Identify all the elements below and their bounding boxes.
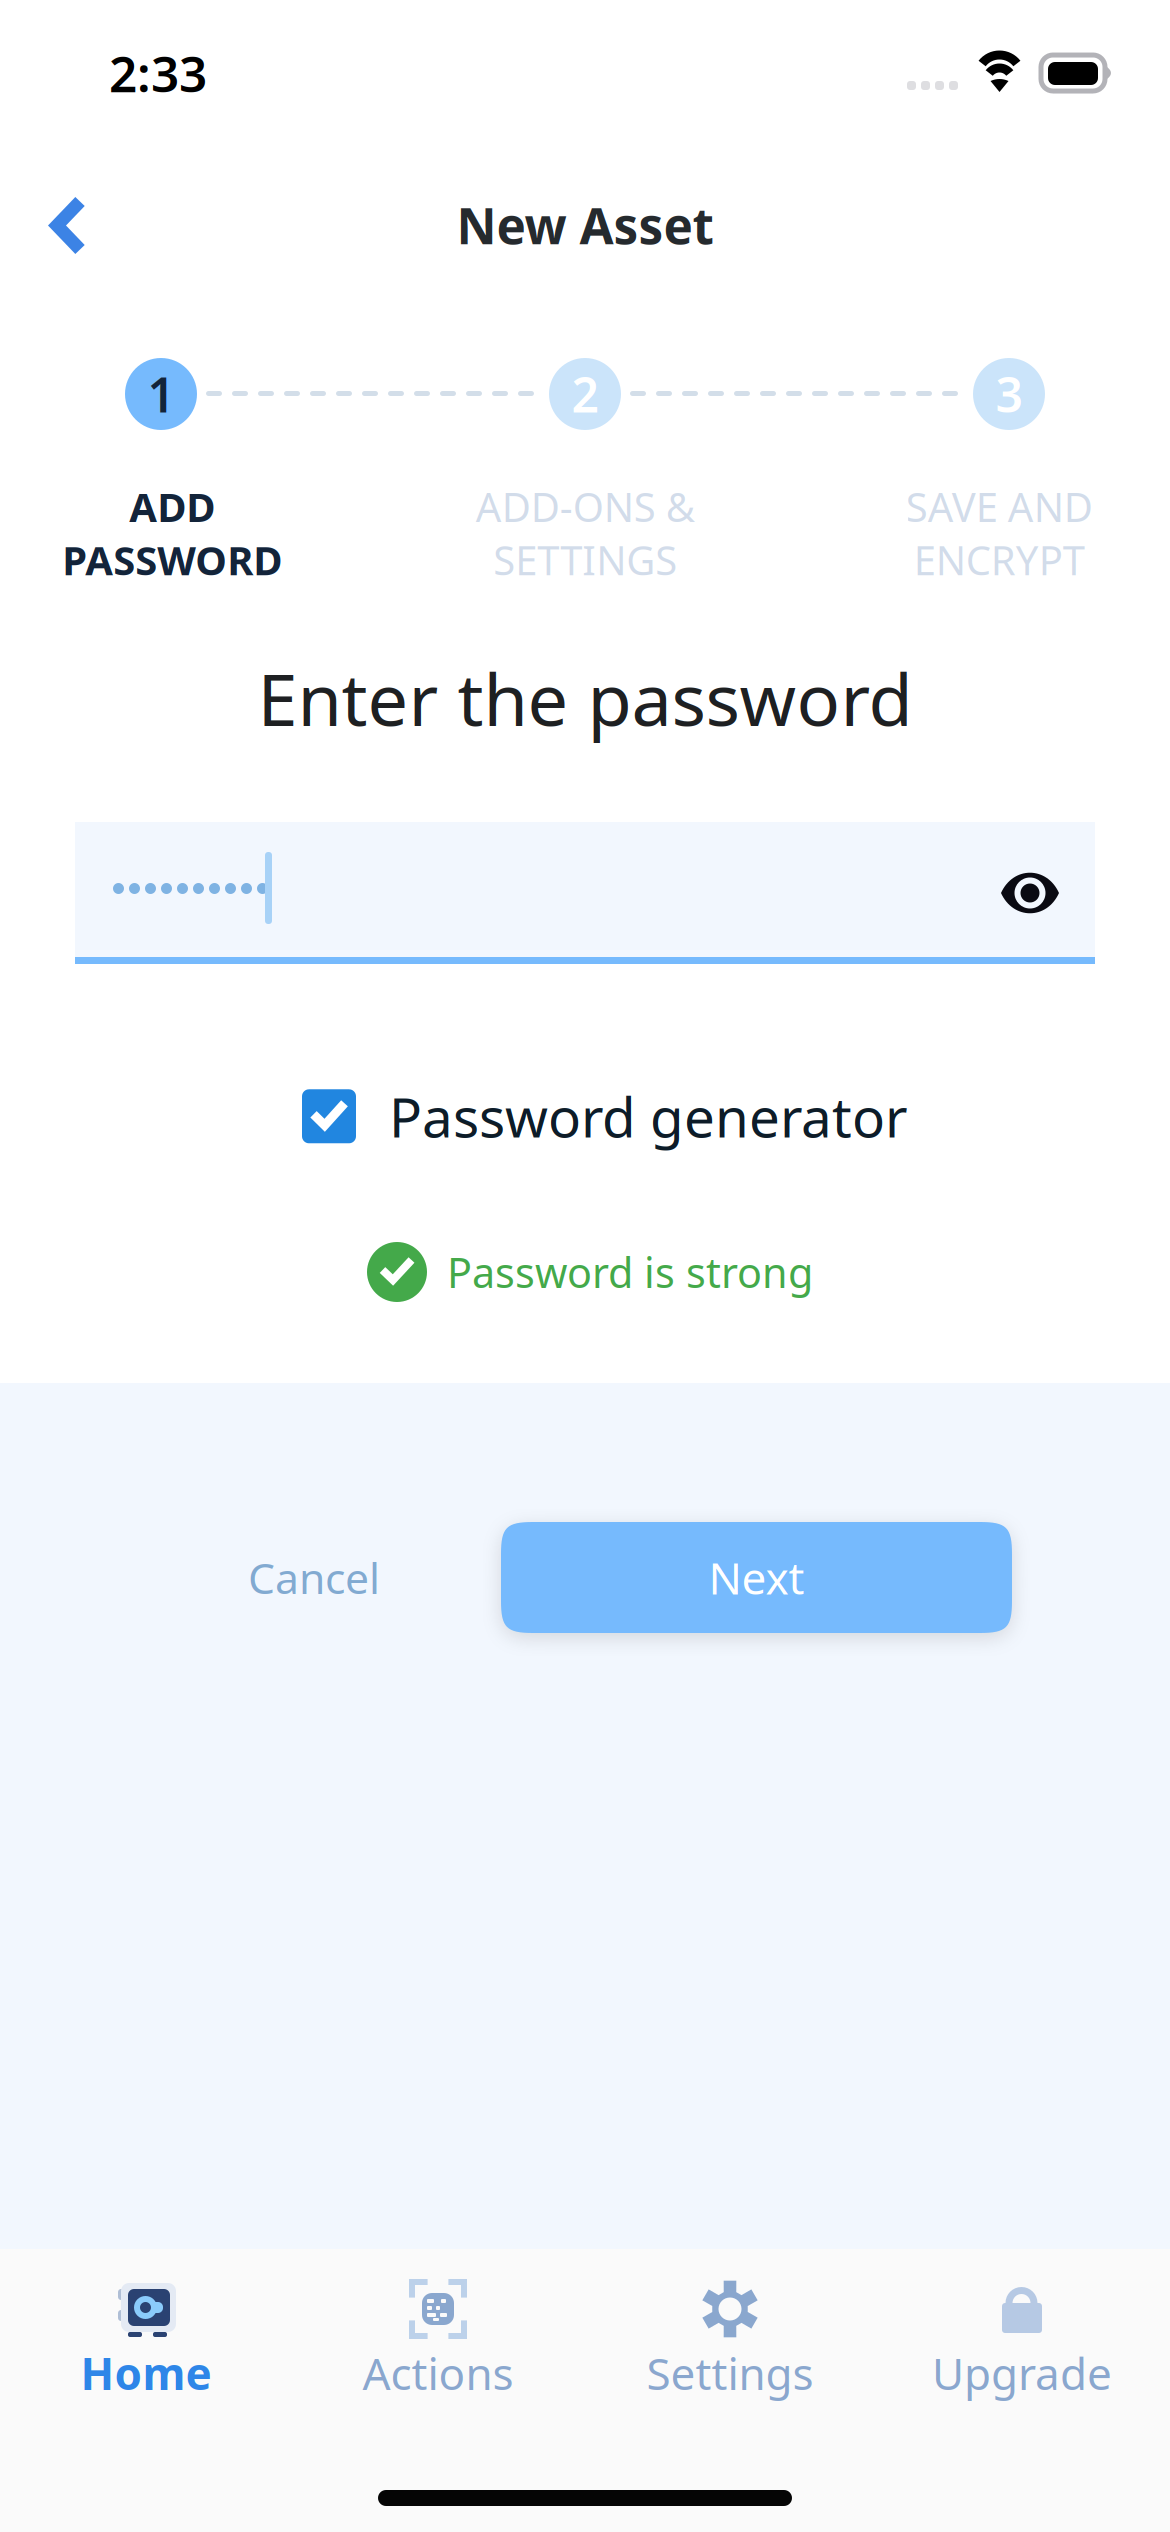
staticText: SAVE AND ENCRYPT: [905, 480, 1092, 586]
staticText: Upgrade: [932, 2344, 1112, 2402]
staticText: Settings: [646, 2344, 813, 2402]
staticText: Actions: [362, 2344, 513, 2402]
button[interactable]: Back: [11, 168, 126, 283]
staticText: 2: [571, 362, 598, 426]
staticText: Password is strong: [447, 1245, 813, 1299]
staticText: Home: [80, 2344, 211, 2402]
staticText: ADD PASSWORD: [62, 480, 282, 586]
staticText: ADD-ONS & SETTINGS: [475, 480, 694, 586]
button[interactable]: Home: [21, 2275, 271, 2427]
button[interactable]: Cancel: [189, 1522, 439, 1633]
staticText: 3: [995, 362, 1022, 426]
staticText: New Asset: [456, 192, 713, 258]
staticText: Cancel: [248, 1549, 380, 1606]
staticText: 1: [147, 362, 174, 426]
button[interactable]: Actions: [313, 2275, 563, 2427]
staticText: 2:33: [109, 40, 207, 106]
button[interactable]: Password generator: [302, 1066, 908, 1167]
button[interactable]: Upgrade: [897, 2275, 1147, 2427]
staticText: Enter the password: [257, 650, 912, 746]
button[interactable]: Settings: [605, 2275, 855, 2427]
staticText: Next: [708, 1548, 804, 1607]
staticText: Password generator: [389, 1080, 908, 1153]
button[interactable]: Show password: [965, 822, 1095, 964]
button[interactable]: Next: [501, 1522, 1012, 1633]
